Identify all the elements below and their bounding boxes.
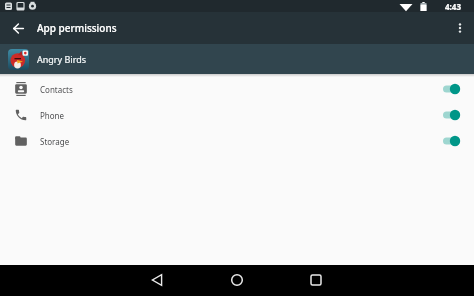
button[interactable] <box>440 82 460 96</box>
staticText: Storage <box>40 136 70 147</box>
button[interactable]: Contacts <box>0 76 474 102</box>
button[interactable]: Angry Birds <box>0 44 474 74</box>
button[interactable] <box>304 268 328 292</box>
button[interactable] <box>145 268 169 292</box>
staticText: Contacts <box>40 84 73 95</box>
staticText: Angry Birds <box>37 53 87 65</box>
staticText: App permissions <box>37 21 117 35</box>
button[interactable] <box>440 134 460 148</box>
button[interactable] <box>445 12 474 44</box>
button[interactable] <box>440 108 460 122</box>
button[interactable]: Phone <box>0 102 474 128</box>
button[interactable]: Storage <box>0 128 474 154</box>
button[interactable] <box>0 12 36 44</box>
staticText: 4:43 <box>445 1 461 12</box>
button[interactable] <box>225 268 249 292</box>
staticText: Phone <box>40 110 65 121</box>
